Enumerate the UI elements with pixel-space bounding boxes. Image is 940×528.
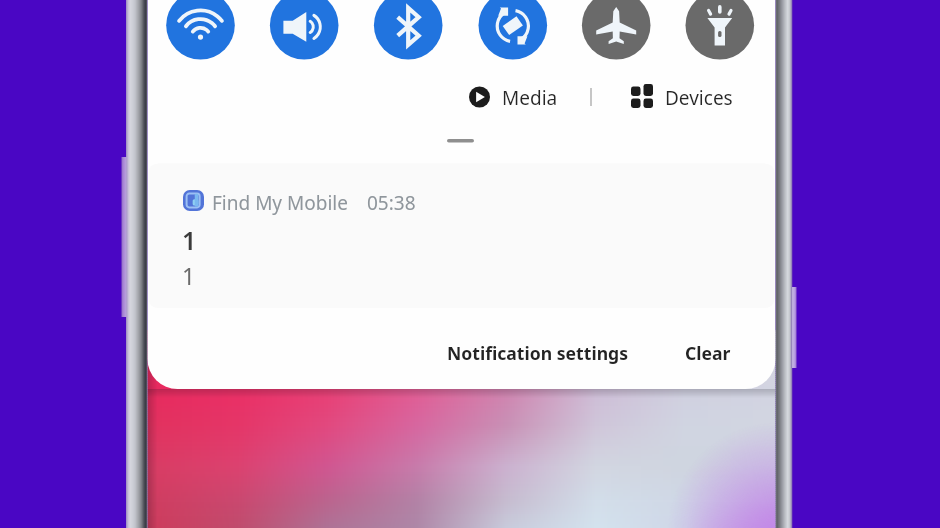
staticText: 1 [182,260,196,291]
button[interactable]: Clear [674,333,746,371]
button[interactable]: Wi-Fi [164,0,236,59]
button[interactable]: Sound [268,0,340,59]
button[interactable]: Media [466,80,562,114]
staticText: 1 [182,223,197,257]
button[interactable]: Notification settings [436,333,640,371]
staticText: Media [502,85,558,111]
button[interactable]: Flashlight [684,0,756,59]
button[interactable]: Devices [628,80,740,114]
staticText: Find My Mobile [212,190,348,216]
staticText: Clear [685,341,731,365]
staticText: 05:38 [367,190,416,216]
button[interactable]: Auto rotate [476,0,548,59]
staticText: Devices [665,85,733,111]
button[interactable]: Bluetooth [372,0,444,59]
button[interactable]: Airplane mode [580,0,652,59]
staticText: Notification settings [447,341,629,365]
